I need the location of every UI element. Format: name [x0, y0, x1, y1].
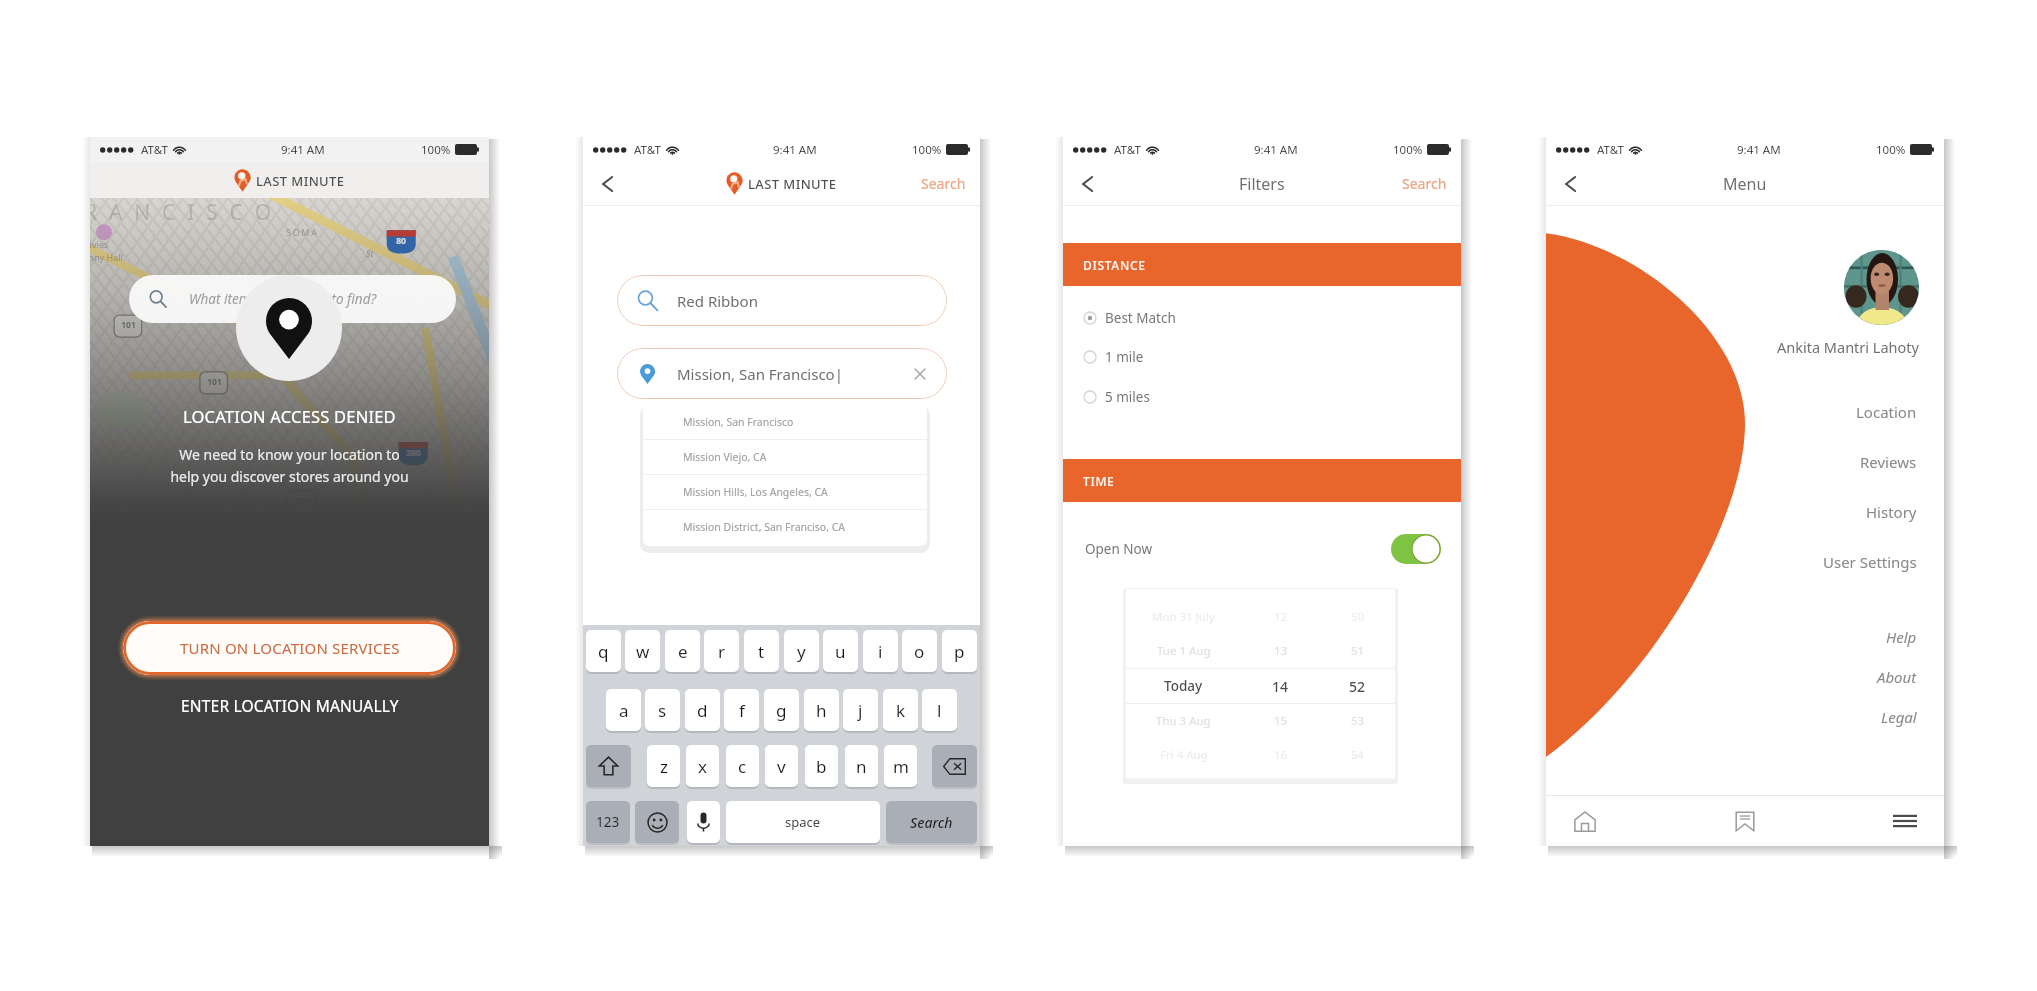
button[interactable]: [1844, 250, 1919, 325]
button[interactable]: 1 mile: [1063, 343, 1461, 371]
button[interactable]: Reviews: [1858, 437, 1919, 487]
button[interactable]: Back: [587, 164, 627, 204]
button[interactable]: User Settings: [1821, 537, 1919, 587]
button[interactable]: u: [823, 630, 858, 672]
button[interactable]: What item do you want to find?: [129, 275, 456, 323]
button[interactable]: x: [686, 745, 719, 787]
staticText: Reviews: [1860, 452, 1917, 472]
button[interactable]: Back: [1550, 164, 1590, 204]
button[interactable]: a: [606, 689, 641, 731]
staticText: 9:41 AM: [281, 142, 325, 158]
staticText: p: [954, 640, 965, 663]
button[interactable]: w: [625, 630, 660, 672]
button[interactable]: [635, 801, 679, 843]
staticText: Search: [921, 174, 966, 193]
staticText: Search: [910, 813, 953, 832]
staticText: j: [858, 699, 863, 722]
button[interactable]: [932, 745, 977, 787]
button[interactable]: n: [845, 745, 878, 787]
staticText: 9:41 AM: [1737, 142, 1781, 158]
button[interactable]: e: [665, 630, 700, 672]
button[interactable]: h: [804, 689, 839, 731]
staticText: SOMA: [286, 226, 319, 238]
button[interactable]: Search: [1402, 174, 1447, 193]
button[interactable]: About: [1875, 657, 1919, 697]
staticText: space: [785, 813, 821, 831]
staticText: n: [856, 755, 867, 778]
button[interactable]: g: [764, 689, 799, 731]
staticText: 1 mile: [1105, 348, 1144, 366]
staticText: Search: [1402, 174, 1447, 193]
button[interactable]: p: [942, 630, 977, 672]
staticText: 53: [1351, 713, 1365, 729]
button[interactable]: c: [726, 745, 759, 787]
staticText: About: [1877, 667, 1917, 687]
staticText: 13: [1274, 643, 1288, 659]
staticText: 9:41 AM: [1254, 142, 1298, 158]
button[interactable]: History: [1864, 487, 1919, 537]
button[interactable]: j: [843, 689, 878, 731]
button[interactable]: [586, 745, 631, 787]
button[interactable]: Open Now: [1063, 531, 1461, 567]
button[interactable]: o: [902, 630, 937, 672]
button[interactable]: m: [884, 745, 917, 787]
staticText: v: [777, 755, 786, 778]
button[interactable]: q: [586, 630, 621, 672]
button[interactable]: b: [805, 745, 838, 787]
button[interactable]: ENTER LOCATION MANUALLY: [177, 691, 403, 720]
button[interactable]: t: [744, 630, 779, 672]
staticText: AT&T: [1114, 142, 1141, 158]
staticText: 101: [121, 319, 136, 331]
button[interactable]: Menu: [1883, 799, 1927, 843]
button[interactable]: 123: [586, 801, 630, 843]
staticText: Red Ribbon: [677, 291, 758, 311]
button[interactable]: Best Match: [1063, 304, 1461, 332]
button[interactable]: Saved: [1723, 799, 1767, 843]
staticText: b: [816, 755, 827, 778]
button[interactable]: Search: [886, 801, 977, 843]
staticText: 100%: [421, 142, 451, 158]
button[interactable]: k: [883, 689, 918, 731]
button[interactable]: i: [863, 630, 898, 672]
staticText: Mission Viejo, CA: [683, 450, 767, 464]
staticText: Mon 31 July: [1152, 609, 1215, 625]
button[interactable]: s: [645, 689, 680, 731]
button[interactable]: [687, 801, 720, 843]
button[interactable]: l: [922, 689, 957, 731]
button[interactable]: Mission, San Francisco|: [617, 348, 947, 399]
staticText: 101: [207, 376, 222, 388]
staticText: User Settings: [1823, 552, 1917, 572]
button[interactable]: d: [685, 689, 720, 731]
button[interactable]: Home: [1563, 799, 1607, 843]
staticText: Thu 3 Aug: [1156, 713, 1211, 729]
staticText: q: [598, 640, 609, 663]
button[interactable]: Search: [921, 174, 966, 193]
button[interactable]: 5 miles: [1063, 383, 1461, 411]
staticText: Mission Hills, Los Angeles, CA: [683, 485, 828, 499]
button[interactable]: z: [647, 745, 680, 787]
button[interactable]: y: [784, 630, 819, 672]
button[interactable]: Back: [1067, 164, 1107, 204]
button[interactable]: v: [765, 745, 798, 787]
staticText: m: [893, 755, 909, 778]
button[interactable]: Mission District, San Franciso, CA: [643, 510, 927, 544]
button[interactable]: Legal: [1879, 697, 1919, 737]
button[interactable]: Location: [1854, 387, 1919, 437]
button[interactable]: Mission Hills, Los Angeles, CA: [643, 475, 927, 509]
staticText: LAST MINUTE: [748, 175, 837, 193]
staticText: x: [698, 755, 707, 778]
button[interactable]: f: [724, 689, 759, 731]
button[interactable]: Mission Viejo, CA: [643, 440, 927, 474]
staticText: d: [697, 699, 708, 722]
button[interactable]: TURN ON LOCATION SERVICES: [123, 621, 456, 675]
staticText: St: [366, 247, 374, 259]
button[interactable]: Help: [1884, 617, 1919, 657]
staticText: o: [914, 640, 925, 663]
button[interactable]: space: [726, 801, 880, 843]
staticText: 51: [1351, 643, 1365, 659]
staticText: 5 miles: [1105, 388, 1150, 406]
button[interactable]: r: [704, 630, 739, 672]
button[interactable]: Mission, San Francisco: [643, 405, 927, 439]
button[interactable]: Red Ribbon: [617, 275, 947, 326]
staticText: 80: [396, 235, 406, 247]
